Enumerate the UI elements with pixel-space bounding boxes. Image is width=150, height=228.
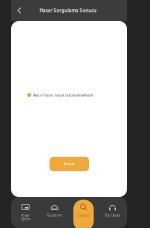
staticText: Hesap Özetim bbox=[20, 213, 30, 221]
button[interactable]: Hesap Özetim bbox=[11, 197, 40, 228]
button[interactable]: Geçişlerim bbox=[40, 197, 69, 228]
button[interactable]: Bize Ulaşın bbox=[98, 197, 127, 228]
staticText: Tamam bbox=[64, 162, 75, 166]
button[interactable]: Back bbox=[11, 0, 28, 21]
staticText: Bize Ulaşın bbox=[104, 213, 120, 217]
button[interactable]: Tamam bbox=[49, 157, 89, 171]
staticText: Sorgula bbox=[77, 213, 89, 217]
staticText: Aracın hasar kaydı bulunmamaktadır bbox=[33, 92, 94, 98]
staticText: Geçişlerim bbox=[47, 213, 62, 217]
staticText: Hasar Sorgulama Sonucu bbox=[39, 7, 96, 14]
button[interactable]: Sorgula bbox=[69, 197, 98, 228]
